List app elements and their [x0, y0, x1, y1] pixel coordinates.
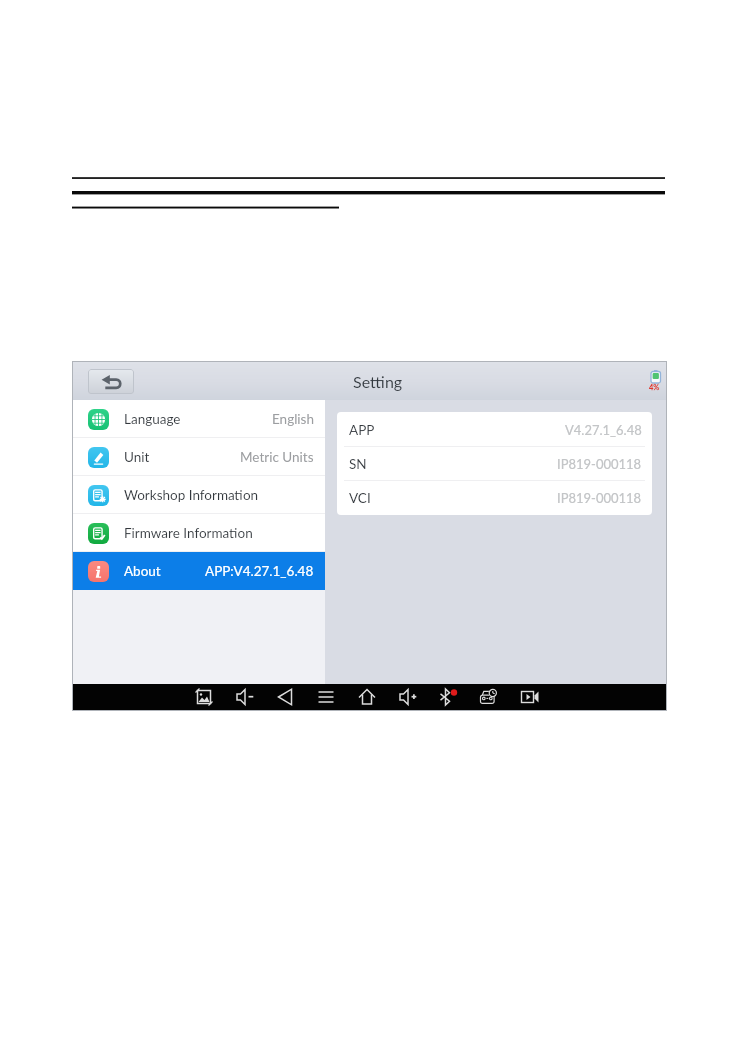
staticText: Workshop Information: [124, 487, 259, 503]
button[interactable]: Volume up: [388, 684, 428, 710]
staticText: Unit: [124, 449, 150, 465]
staticText: V4.27.1_6.48: [565, 422, 642, 438]
staticText: Firmware Information: [124, 525, 253, 541]
button[interactable]: Recent apps: [306, 684, 346, 710]
button[interactable]: Volume down: [225, 684, 265, 710]
button[interactable]: Firmware Information: [73, 514, 325, 552]
button[interactable]: Back: [265, 684, 305, 710]
staticText: Language: [124, 411, 181, 427]
button[interactable]: Vehicle: [469, 684, 509, 710]
staticText: SN: [349, 456, 367, 472]
staticText: VCI: [349, 490, 371, 506]
button[interactable]: Workshop Information: [73, 476, 325, 514]
staticText: APP:V4.27.1_6.48: [205, 563, 314, 579]
button[interactable]: Language: [73, 400, 325, 438]
staticText: IP819-000118: [557, 490, 642, 506]
button[interactable]: Unit: [73, 438, 325, 476]
staticText: Metric Units: [240, 449, 314, 465]
button[interactable]: Record: [510, 684, 550, 710]
button[interactable]: About: [73, 552, 325, 590]
button[interactable]: Bluetooth: [428, 684, 468, 710]
staticText: English: [272, 411, 314, 427]
staticText: Setting: [353, 372, 403, 391]
button[interactable]: Home: [347, 684, 387, 710]
button[interactable]: Screenshot: [184, 684, 224, 710]
staticText: APP: [349, 422, 375, 438]
staticText: 4%: [649, 383, 660, 392]
button[interactable]: Back: [88, 369, 134, 394]
staticText: IP819-000118: [557, 456, 642, 472]
staticText: About: [124, 563, 161, 579]
